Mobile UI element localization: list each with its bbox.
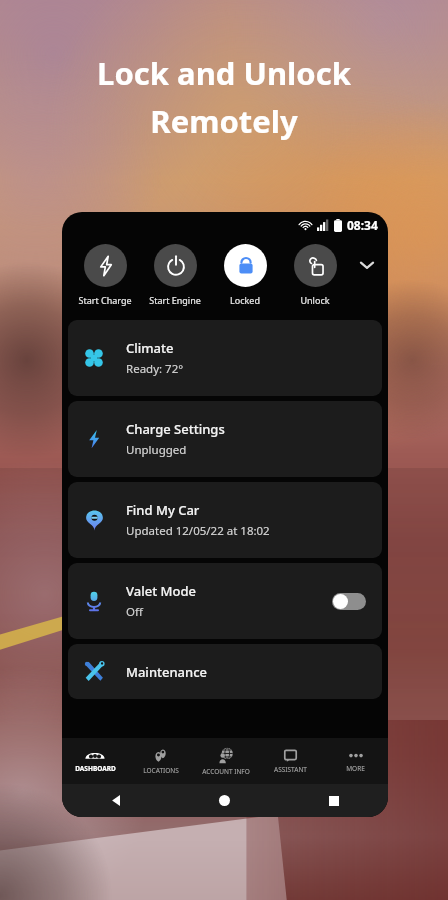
staticText: MORE (346, 764, 365, 773)
button[interactable]: Locked (210, 242, 280, 308)
staticText: Unplugged (126, 442, 187, 458)
button[interactable]: LOCATIONS (128, 738, 193, 784)
staticText: Locked (230, 294, 260, 306)
button[interactable]: Home (170, 784, 279, 817)
button[interactable]: MORE (323, 738, 388, 784)
staticText: Maintenance (126, 663, 208, 681)
button[interactable]: Start Engine (140, 242, 210, 308)
button[interactable]: Expand (350, 242, 384, 304)
button[interactable]: ACCOUNT INFO (193, 738, 258, 784)
staticText: Start Charge (78, 294, 132, 306)
button[interactable]: Climate (68, 320, 382, 396)
staticText: Updated 12/05/22 at 18:02 (126, 523, 270, 539)
staticText: ASSISTANT (274, 765, 307, 774)
staticText: Unlock (300, 294, 330, 306)
staticText: Find My Car (126, 501, 200, 519)
staticText: LOCATIONS (143, 766, 179, 775)
button[interactable]: Maintenance (68, 644, 382, 699)
staticText: Lock and Unlock (97, 52, 351, 94)
staticText: Remotely (150, 100, 298, 142)
button[interactable]: Valet Mode (68, 563, 382, 639)
button[interactable]: DASHBOARD (62, 738, 128, 784)
button[interactable]: Find My Car (68, 482, 382, 558)
staticText: Off (126, 604, 143, 620)
staticText: Valet Mode (126, 582, 196, 600)
staticText: Climate (126, 339, 174, 357)
staticText: Start Engine (149, 294, 201, 306)
staticText: Charge Settings (126, 420, 225, 438)
staticText: DASHBOARD (75, 764, 116, 773)
button[interactable]: Start Charge (70, 242, 140, 308)
button[interactable]: Back (62, 784, 170, 817)
button[interactable]: Unlock (280, 242, 350, 308)
staticText: 08:34 (347, 217, 378, 233)
staticText: Ready: 72° (126, 361, 184, 377)
staticText: ACCOUNT INFO (202, 767, 250, 776)
button[interactable]: Recents (279, 784, 388, 817)
button[interactable]: ASSISTANT (258, 738, 323, 784)
button[interactable]: Valet Mode toggle (332, 593, 366, 610)
button[interactable]: Charge Settings (68, 401, 382, 477)
